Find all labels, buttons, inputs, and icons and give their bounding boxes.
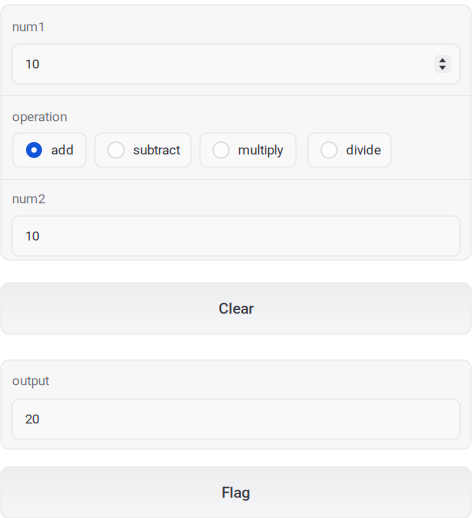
button[interactable]: subtract <box>95 133 191 167</box>
staticText: Flag <box>221 483 250 501</box>
button[interactable]: Flag <box>1 467 471 518</box>
staticText: divide <box>346 142 381 158</box>
staticText: multiply <box>238 142 283 158</box>
staticText: add <box>51 142 74 158</box>
staticText: output <box>12 373 49 389</box>
staticText: Clear <box>218 299 253 317</box>
button[interactable]: divide <box>308 133 391 167</box>
staticText: 10 <box>25 56 39 72</box>
staticText: 20 <box>25 411 39 427</box>
staticText: num2 <box>12 191 45 207</box>
button[interactable]: add <box>13 133 86 167</box>
button[interactable]: Clear <box>1 283 471 334</box>
staticText: subtract <box>133 142 180 158</box>
staticText: num1 <box>12 19 45 35</box>
staticText: operation <box>12 109 67 125</box>
button[interactable]: Step value <box>434 55 451 73</box>
button[interactable]: multiply <box>200 133 296 167</box>
staticText: 10 <box>25 228 39 244</box>
